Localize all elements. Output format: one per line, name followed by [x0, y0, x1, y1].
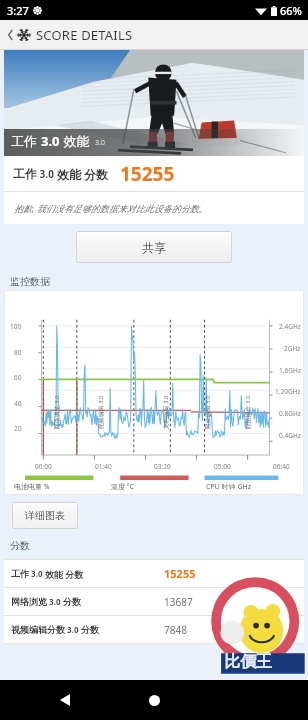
button[interactable]: 网络浏览 — [4, 588, 304, 615]
staticText: 效能 分数 — [45, 568, 84, 580]
staticText: 1.20GHz — [275, 387, 301, 396]
staticText: 文档编写 3.0 — [161, 394, 169, 429]
staticText: 80 — [14, 348, 22, 357]
staticText: 15255 — [120, 161, 175, 187]
staticText: 效能 — [60, 132, 90, 150]
staticText: 数据操作 3.0 — [243, 394, 251, 429]
staticText: 效能 分数 — [57, 166, 109, 182]
button[interactable]: Home — [140, 686, 168, 714]
staticText: 电池电量 % — [14, 482, 50, 492]
staticText: 03:20 — [154, 462, 171, 471]
staticText: 共享 — [142, 240, 166, 255]
staticText: 1.6GHz — [279, 366, 301, 375]
staticText: 60 — [14, 373, 22, 382]
staticText: 3.0 — [65, 624, 81, 635]
staticText: 7848 — [164, 623, 187, 637]
staticText: 视频编辑分数 — [11, 624, 65, 635]
staticText: CPU 时钟 GHz — [206, 482, 251, 492]
staticText: 01:40 — [95, 462, 112, 471]
staticText: SCORE DETAILS — [36, 26, 133, 44]
staticText: 照片编辑 3.0 — [203, 394, 211, 429]
staticText: 40 — [14, 399, 22, 408]
staticText: 15255 — [164, 566, 196, 581]
button[interactable]: Back — [51, 686, 79, 714]
staticText: 工作 — [13, 166, 37, 181]
staticText: 05:00 — [214, 462, 231, 471]
staticText: 0.8GHz — [279, 409, 301, 418]
button[interactable]: Back — [4, 22, 17, 48]
staticText: 温度 °C — [111, 482, 135, 492]
button[interactable]: 视频编辑分数 — [4, 616, 304, 643]
staticText: 监控数据 — [10, 275, 50, 288]
staticText: 工作 — [11, 132, 41, 150]
staticText: 13687 — [164, 595, 193, 609]
staticText: 视频编辑 3.0 — [96, 394, 104, 429]
staticText: 3.0 — [37, 167, 57, 181]
staticText: 20 — [14, 424, 22, 433]
staticText: 比價王 — [224, 652, 272, 672]
staticText: 0.4GHz — [279, 431, 301, 440]
staticText: 分数 — [10, 539, 30, 552]
staticText: 网络浏览 3.0 — [52, 394, 60, 429]
staticText: 100 — [10, 322, 22, 331]
staticText: 3.0 — [47, 596, 63, 607]
staticText: 66% — [280, 3, 302, 18]
button[interactable]: 共享 — [76, 231, 232, 263]
staticText: 详细图表 — [25, 509, 65, 522]
staticText: 06:40 — [273, 462, 290, 471]
staticText: 3.0 — [41, 132, 60, 150]
staticText: 2GHz — [284, 344, 301, 353]
button[interactable]: 详细图表 — [12, 502, 78, 529]
staticText: 分数 — [81, 624, 99, 635]
staticText: 3.0 — [95, 138, 105, 148]
staticText: 网络浏览 — [11, 596, 47, 607]
staticText: 分数 — [63, 596, 81, 607]
staticText: 00:00 — [35, 462, 52, 471]
staticText: 2.4GHz — [279, 322, 301, 331]
staticText: 抱歉, 我们没有足够的数据来对比此设备的分数。 — [14, 202, 208, 214]
staticText: 工作 — [11, 568, 29, 579]
staticText: 3:27 — [7, 3, 29, 18]
button[interactable]: 工作 — [4, 560, 304, 587]
staticText: 3.0 — [29, 568, 45, 579]
